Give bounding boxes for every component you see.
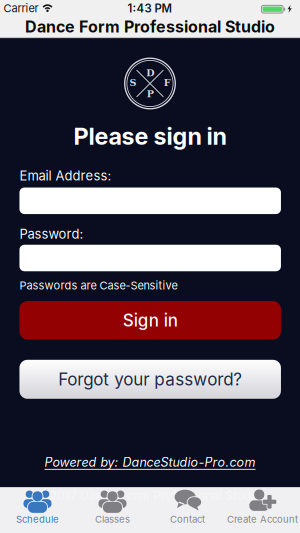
button[interactable]: Email Address (19, 188, 281, 214)
staticText: Email Address: (19, 168, 111, 184)
staticText: Carrier (3, 2, 38, 15)
button[interactable]: Contact (150, 487, 225, 532)
staticText: F (164, 77, 171, 88)
button[interactable]: Create Account (225, 487, 300, 532)
staticText: Classes (95, 513, 130, 525)
button[interactable]: Forgot your password? (19, 360, 281, 399)
staticText: Powered by: DanceStudio-Pro.com (44, 455, 255, 470)
staticText: Password: (19, 226, 83, 242)
staticText: Forgot your password? (58, 369, 242, 390)
staticText: Sign in (123, 310, 178, 331)
staticText: Contact (170, 513, 205, 525)
staticText: Schedule (16, 513, 59, 525)
button[interactable]: Powered by: DanceStudio-Pro.com (44, 455, 255, 470)
staticText: Please sign in (73, 122, 226, 150)
staticText: D (146, 67, 154, 79)
staticText: P (147, 88, 154, 100)
button[interactable]: Classes (75, 487, 150, 532)
staticText: 1:43 PM (128, 1, 172, 15)
button[interactable]: Sign in (19, 301, 281, 340)
button[interactable]: Schedule (0, 487, 75, 532)
staticText: Create Account (227, 513, 298, 525)
staticText: Dance Form Professional Studio (25, 17, 275, 36)
staticText: ©2017 Dance Form Professional Studio (39, 488, 261, 503)
button[interactable]: Password (19, 245, 281, 271)
staticText: S (129, 77, 136, 88)
staticText: Passwords are Case-Sensitive (19, 279, 177, 292)
